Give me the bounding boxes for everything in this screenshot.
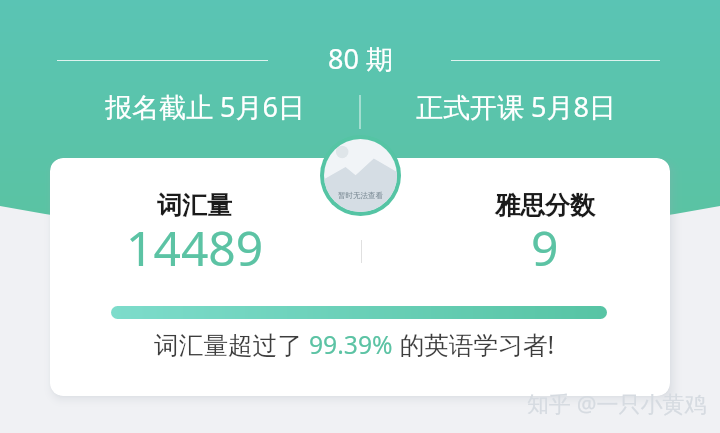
staticText: 知乎 @一只小黄鸡 [527, 388, 707, 418]
staticText: 暂时无法查看 [338, 191, 383, 200]
staticText: 词汇量超过了 [154, 328, 309, 362]
button[interactable]: Profile photo unavailable [324, 139, 397, 212]
staticText: 正式开课 5月8日 [416, 88, 616, 125]
staticText: 80 期 [328, 40, 393, 77]
button[interactable]: 词汇量 [50, 158, 670, 396]
staticText: 14489 [126, 215, 264, 280]
staticText: 的英语学习者! [393, 328, 555, 362]
staticText: 99.39% [309, 328, 393, 362]
staticText: 报名截止 5月6日 [105, 88, 305, 125]
staticText: 雅思分数 [495, 190, 595, 221]
staticText: 词汇量 [157, 190, 232, 221]
staticText: 9 [531, 215, 559, 280]
